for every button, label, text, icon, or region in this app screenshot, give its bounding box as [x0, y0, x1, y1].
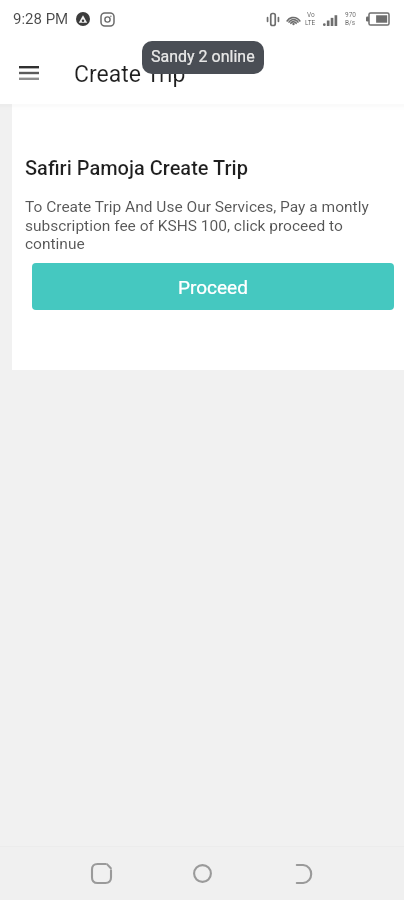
staticText: LTE [305, 19, 316, 27]
button[interactable]: Back [279, 849, 328, 898]
staticText: To Create Trip And Use Our Services, Pay… [25, 198, 388, 252]
staticText: 9:28 PM [13, 10, 69, 28]
staticText: Vo [307, 11, 315, 19]
button[interactable]: Home [178, 849, 227, 898]
staticText: Safiri Pamoja Create Trip [25, 156, 248, 179]
button[interactable]: Proceed [32, 263, 394, 310]
staticText: Create Trip [74, 61, 186, 88]
staticText: 970 [345, 11, 356, 19]
button[interactable]: Open navigation menu [9, 53, 49, 93]
staticText: Proceed [178, 276, 248, 298]
button[interactable]: Recent apps [77, 849, 126, 898]
staticText: Sandy 2 online [151, 47, 255, 66]
staticText: B/s [345, 19, 356, 27]
